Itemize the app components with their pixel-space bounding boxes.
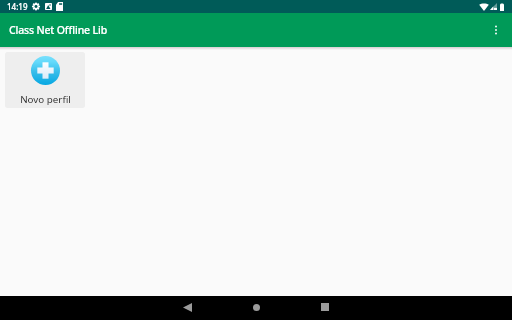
button[interactable]: More options bbox=[488, 22, 504, 38]
staticText: Novo perfil bbox=[20, 93, 71, 106]
staticText: Class Net Offline Lib bbox=[9, 23, 108, 37]
button[interactable]: Home bbox=[244, 295, 268, 319]
button[interactable]: Back bbox=[175, 295, 199, 319]
button[interactable]: Recent apps bbox=[313, 295, 337, 319]
staticText: 14:19 bbox=[7, 1, 28, 12]
button[interactable]: Novo perfil bbox=[5, 52, 85, 108]
